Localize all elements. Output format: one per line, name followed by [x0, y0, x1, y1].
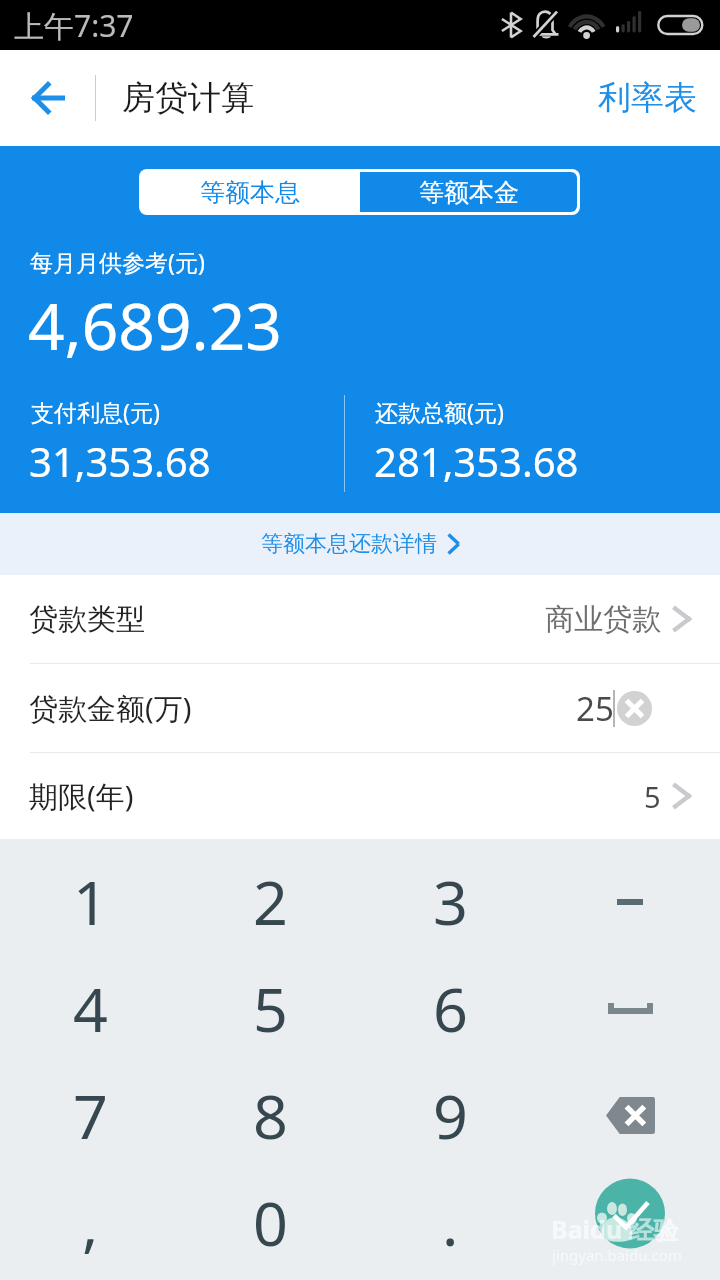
button[interactable]: 等额本息: [139, 169, 360, 215]
staticText: 等额本息: [200, 177, 300, 208]
staticText: 贷款类型: [29, 601, 145, 638]
button[interactable]: 4: [0, 955, 180, 1062]
staticText: .: [442, 1181, 459, 1264]
staticText: 281,353.68: [374, 434, 579, 488]
button[interactable]: Clear: [617, 691, 652, 726]
button[interactable]: Backspace: [540, 1062, 720, 1169]
button[interactable]: 贷款金额(万): [0, 664, 720, 752]
button[interactable]: 等额本息还款详情: [0, 513, 720, 575]
button[interactable]: 5: [180, 955, 360, 1062]
staticText: 每月月供参考(元): [30, 246, 205, 277]
staticText: 房贷计算: [122, 77, 254, 119]
staticText: 期限(年): [29, 776, 134, 816]
staticText: jingyan.baidu.com: [552, 1245, 682, 1265]
button[interactable]: Space: [540, 955, 720, 1062]
staticText: 贷款金额(万): [29, 688, 192, 728]
button[interactable]: 3: [360, 848, 540, 955]
button[interactable]: 6: [360, 955, 540, 1062]
staticText: 3: [433, 860, 468, 943]
button[interactable]: 利率表: [574, 50, 720, 146]
staticText: 5: [253, 967, 288, 1050]
button[interactable]: Blank: [540, 1169, 720, 1276]
button[interactable]: 期限(年): [0, 753, 720, 839]
button[interactable]: .: [360, 1169, 540, 1276]
staticText: ,: [82, 1181, 99, 1264]
staticText: 8: [253, 1074, 288, 1157]
button[interactable]: 0: [180, 1169, 360, 1276]
staticText: 支付利息(元): [31, 396, 160, 427]
staticText: 31,353.68: [29, 434, 211, 488]
staticText: 9: [433, 1074, 468, 1157]
staticText: 还款总额(元): [375, 396, 504, 427]
staticText: 1: [73, 860, 108, 943]
button[interactable]: 8: [180, 1062, 360, 1169]
staticText: 商业贷款: [545, 601, 661, 638]
button[interactable]: 贷款类型: [0, 575, 720, 663]
button[interactable]: 1: [0, 848, 180, 955]
button[interactable]: 9: [360, 1062, 540, 1169]
staticText: 7: [73, 1074, 108, 1157]
staticText: 5: [644, 777, 661, 816]
button[interactable]: Back: [0, 50, 96, 146]
button[interactable]: ,: [0, 1169, 180, 1276]
staticText: 上午7:37: [14, 5, 134, 46]
staticText: 25: [576, 686, 614, 731]
staticText: 4,689.23: [28, 282, 282, 369]
staticText: 等额本息还款详情: [261, 530, 437, 558]
staticText: 6: [433, 967, 468, 1050]
button[interactable]: 等额本金: [360, 172, 577, 212]
button[interactable]: 7: [0, 1062, 180, 1169]
staticText: 等额本金: [419, 177, 519, 208]
button[interactable]: Minus: [540, 848, 720, 955]
staticText: 0: [253, 1181, 288, 1264]
button[interactable]: 2: [180, 848, 360, 955]
staticText: Baidu 经验: [551, 1212, 679, 1246]
staticText: 2: [253, 860, 288, 943]
staticText: 利率表: [598, 77, 697, 119]
staticText: 4: [73, 967, 108, 1050]
